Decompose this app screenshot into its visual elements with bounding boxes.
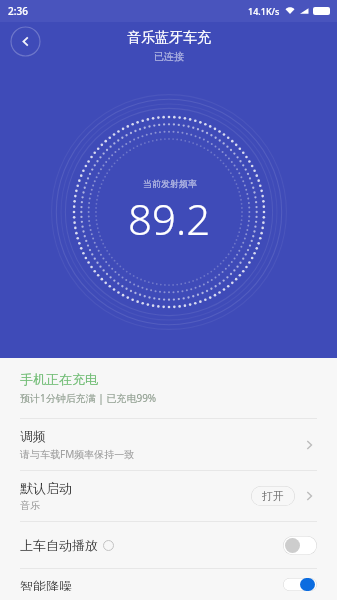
staticText: 当前发射频率 — [143, 178, 197, 189]
staticText: 音乐 — [20, 499, 40, 512]
button[interactable]: 调频 — [0, 419, 337, 470]
button[interactable]: 智能降噪 — [0, 569, 337, 600]
staticText: 上车自动播放 — [20, 537, 98, 553]
staticText: 音乐蓝牙车充 — [127, 29, 211, 47]
staticText: 手机正在充电 — [20, 371, 98, 387]
button[interactable]: 上车自动播放 — [0, 522, 337, 568]
staticText: 2:36 — [8, 4, 28, 18]
staticText: 预计1分钟后充满 | 已充电99% — [20, 391, 157, 405]
staticText: 默认启动 — [20, 480, 72, 496]
button[interactable]: 默认启动 — [0, 471, 337, 521]
staticText: 14.1K/s — [248, 5, 280, 17]
staticText: 智能降噪 — [20, 578, 72, 591]
staticText: 调频 — [20, 428, 46, 444]
staticText: 请与车载FM频率保持一致 — [20, 447, 135, 461]
staticText: 已连接 — [154, 50, 184, 63]
staticText: 89.2 — [128, 190, 211, 247]
button[interactable]: Switch on — [283, 578, 317, 591]
button[interactable]: Switch off — [283, 536, 317, 555]
button[interactable]: 手机正在充电 — [0, 358, 337, 418]
staticText: 打开 — [262, 489, 284, 503]
button[interactable]: Back — [10, 26, 41, 57]
